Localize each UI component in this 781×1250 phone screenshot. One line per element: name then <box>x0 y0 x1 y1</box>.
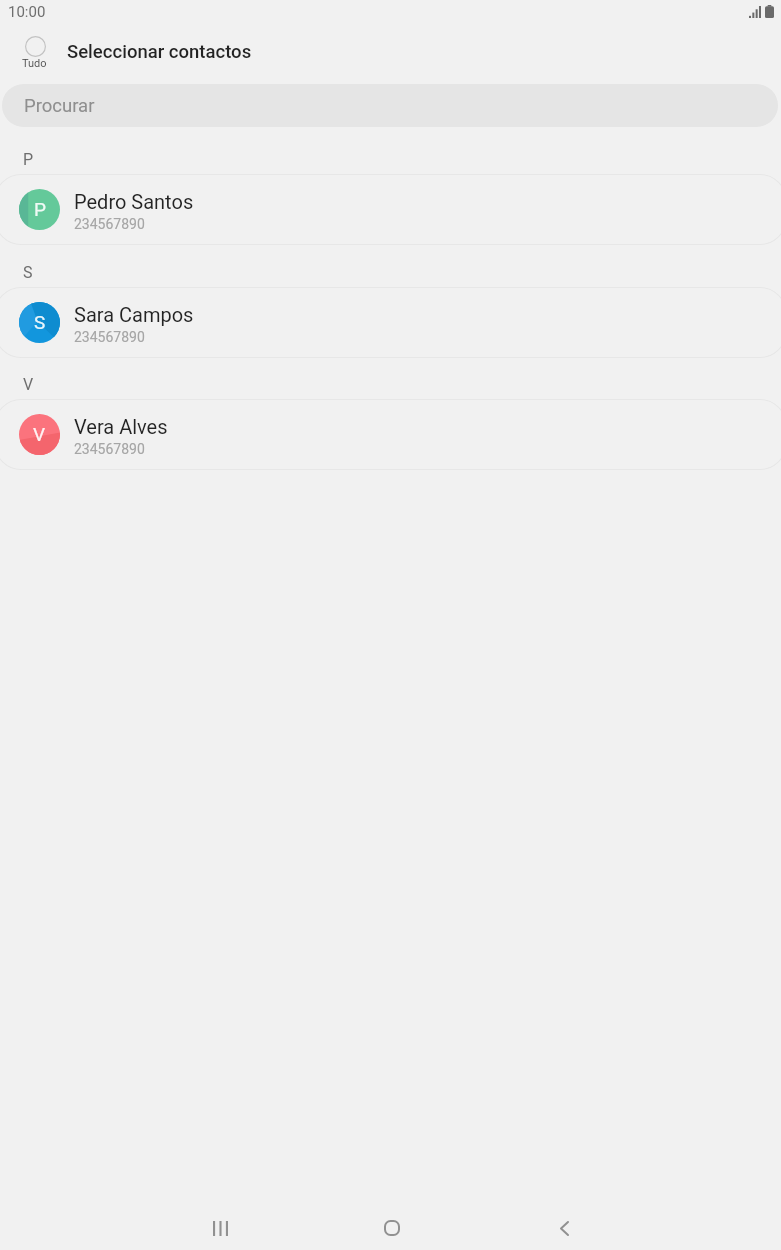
staticText: V <box>33 423 46 445</box>
button[interactable]: Recent apps <box>190 1200 250 1250</box>
staticText: S <box>34 311 46 333</box>
staticText: Vera Alves <box>74 415 168 438</box>
staticText: 234567890 <box>74 329 145 345</box>
staticText: Sara Campos <box>74 303 194 326</box>
button[interactable]: Back <box>534 1200 594 1250</box>
button[interactable]: S <box>0 287 781 358</box>
staticText: V <box>23 375 34 394</box>
staticText: Pedro Santos <box>74 190 194 213</box>
button[interactable]: P <box>0 174 781 245</box>
staticText: S <box>23 263 33 282</box>
button[interactable]: Procurar <box>2 84 778 127</box>
staticText: Seleccionar contactos <box>67 41 252 63</box>
button[interactable]: V <box>0 399 781 470</box>
staticText: 234567890 <box>74 216 145 232</box>
button[interactable]: Tudo, selecionar todos os contactos <box>15 30 54 74</box>
button[interactable]: Home <box>362 1200 422 1250</box>
staticText: Tudo <box>22 57 47 70</box>
staticText: P <box>34 198 46 220</box>
staticText: 10:00 <box>8 3 46 21</box>
staticText: P <box>23 150 34 169</box>
staticText: Procurar <box>24 95 95 117</box>
staticText: 234567890 <box>74 441 145 457</box>
